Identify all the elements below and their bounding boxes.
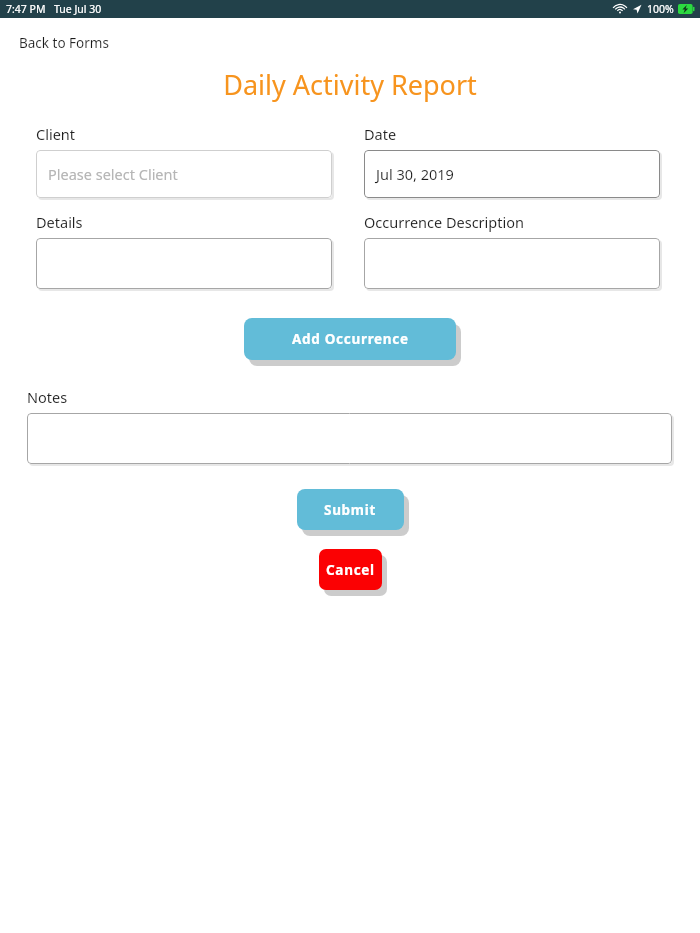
staticText: 100% (647, 2, 674, 16)
button[interactable]: Back to Forms (11, 31, 117, 55)
staticText: Submit (324, 501, 377, 519)
staticText: Jul 30, 2019 (376, 164, 454, 184)
button[interactable] (36, 238, 332, 289)
button[interactable]: Please select Client (36, 150, 332, 198)
staticText: Date (364, 124, 397, 144)
button[interactable]: Submit (297, 489, 404, 530)
button[interactable] (27, 413, 672, 464)
staticText: 7:47 PM (6, 2, 46, 16)
staticText: Back to Forms (19, 34, 109, 52)
button[interactable]: Cancel (319, 549, 382, 590)
button[interactable]: Add Occurrence (244, 318, 456, 360)
staticText: Occurrence Description (364, 212, 524, 232)
staticText: Details (36, 212, 83, 232)
button[interactable] (364, 238, 660, 289)
staticText: Client (36, 124, 76, 144)
staticText: Add Occurrence (292, 330, 409, 348)
staticText: Please select Client (48, 164, 178, 184)
staticText: Notes (27, 387, 68, 407)
staticText: Daily Activity Report (223, 66, 477, 103)
button[interactable]: Jul 30, 2019 (364, 150, 660, 198)
staticText: Tue Jul 30 (54, 2, 102, 16)
staticText: Cancel (326, 561, 375, 579)
